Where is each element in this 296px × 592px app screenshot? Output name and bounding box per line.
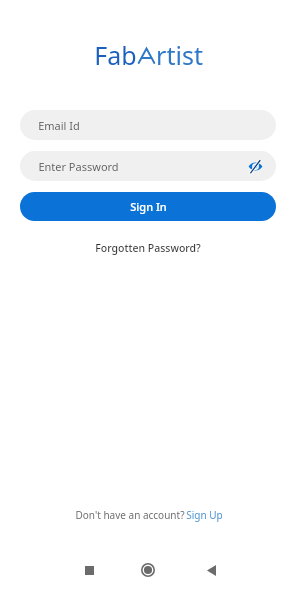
staticText: rtist — [156, 38, 203, 72]
button[interactable]: Sign In — [20, 192, 276, 221]
staticText: Sign In — [130, 199, 167, 214]
button[interactable]: Sign Up — [186, 508, 223, 522]
staticText: Forgotten Password? — [95, 241, 201, 255]
button[interactable]: Email Id — [20, 110, 276, 140]
staticText: Don't have an account? — [74, 508, 186, 522]
staticText: Fab — [94, 38, 137, 72]
button[interactable]: Enter Password — [20, 151, 276, 181]
button[interactable]: Back — [196, 555, 226, 585]
button[interactable]: Recent apps — [74, 555, 104, 585]
button[interactable]: Forgotten Password? — [89, 238, 207, 258]
staticText: Email Id — [38, 118, 80, 133]
staticText: Enter Password — [38, 159, 119, 174]
button[interactable]: Home — [133, 555, 163, 585]
button[interactable]: Show password — [244, 155, 266, 177]
staticText: Sign Up — [186, 508, 223, 522]
